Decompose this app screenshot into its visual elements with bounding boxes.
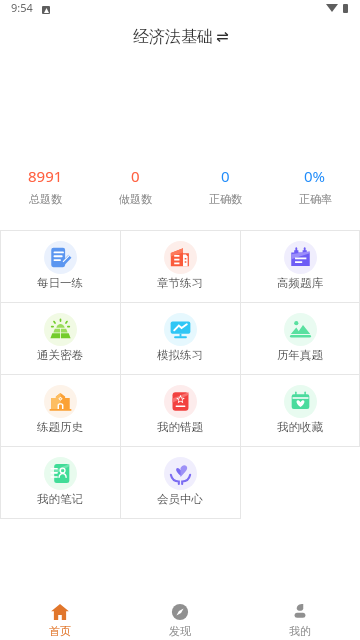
button[interactable]: 我的错题 (120, 373, 240, 445)
staticText: 历年真题 (277, 348, 323, 362)
button[interactable]: 我的笔记 (0, 445, 120, 517)
button[interactable]: 历年真题 (240, 301, 360, 373)
staticText: 我的错题 (157, 420, 203, 434)
button[interactable]: 0 (90, 164, 180, 208)
staticText: 0% (304, 166, 326, 186)
button[interactable]: 每日一练 (0, 229, 120, 301)
staticText: 我的收藏 (277, 420, 323, 434)
staticText: 9:54 (11, 0, 33, 15)
staticText: 0 (221, 166, 230, 186)
staticText: 会员中心 (157, 492, 203, 506)
staticText: 模拟练习 (157, 348, 203, 362)
button[interactable]: 通关密卷 (0, 301, 120, 373)
button[interactable]: 模拟练习 (120, 301, 240, 373)
staticText: 8991 (28, 166, 63, 186)
staticText: 经济法基础 (133, 27, 213, 47)
staticText: 0 (131, 166, 140, 186)
button[interactable]: 0 (180, 164, 270, 208)
staticText: 我的笔记 (37, 492, 83, 506)
button[interactable]: 经济法基础 (133, 27, 228, 47)
staticText: 高频题库 (277, 276, 323, 290)
button[interactable]: 练题历史 (0, 373, 120, 445)
button[interactable]: 我的收藏 (240, 373, 360, 445)
staticText: 正确率 (299, 192, 332, 206)
staticText: 正确数 (209, 192, 242, 206)
button[interactable]: 0% (270, 164, 360, 208)
button[interactable]: 章节练习 (120, 229, 240, 301)
staticText: 做题数 (119, 192, 152, 206)
button[interactable]: 8991 (0, 164, 90, 208)
staticText: 通关密卷 (37, 348, 83, 362)
staticText: 发现 (169, 624, 191, 638)
button[interactable]: 发现 (120, 596, 240, 638)
staticText: 总题数 (29, 192, 62, 206)
staticText: 练题历史 (37, 420, 83, 434)
staticText: 首页 (49, 624, 71, 638)
button[interactable]: 高频题库 (240, 229, 360, 301)
button[interactable]: 会员中心 (120, 445, 240, 517)
button[interactable]: 首页 (0, 596, 120, 638)
button[interactable]: 我的 (240, 596, 360, 638)
staticText: 我的 (289, 624, 311, 638)
staticText: 每日一练 (37, 276, 83, 290)
staticText: 章节练习 (157, 276, 203, 290)
